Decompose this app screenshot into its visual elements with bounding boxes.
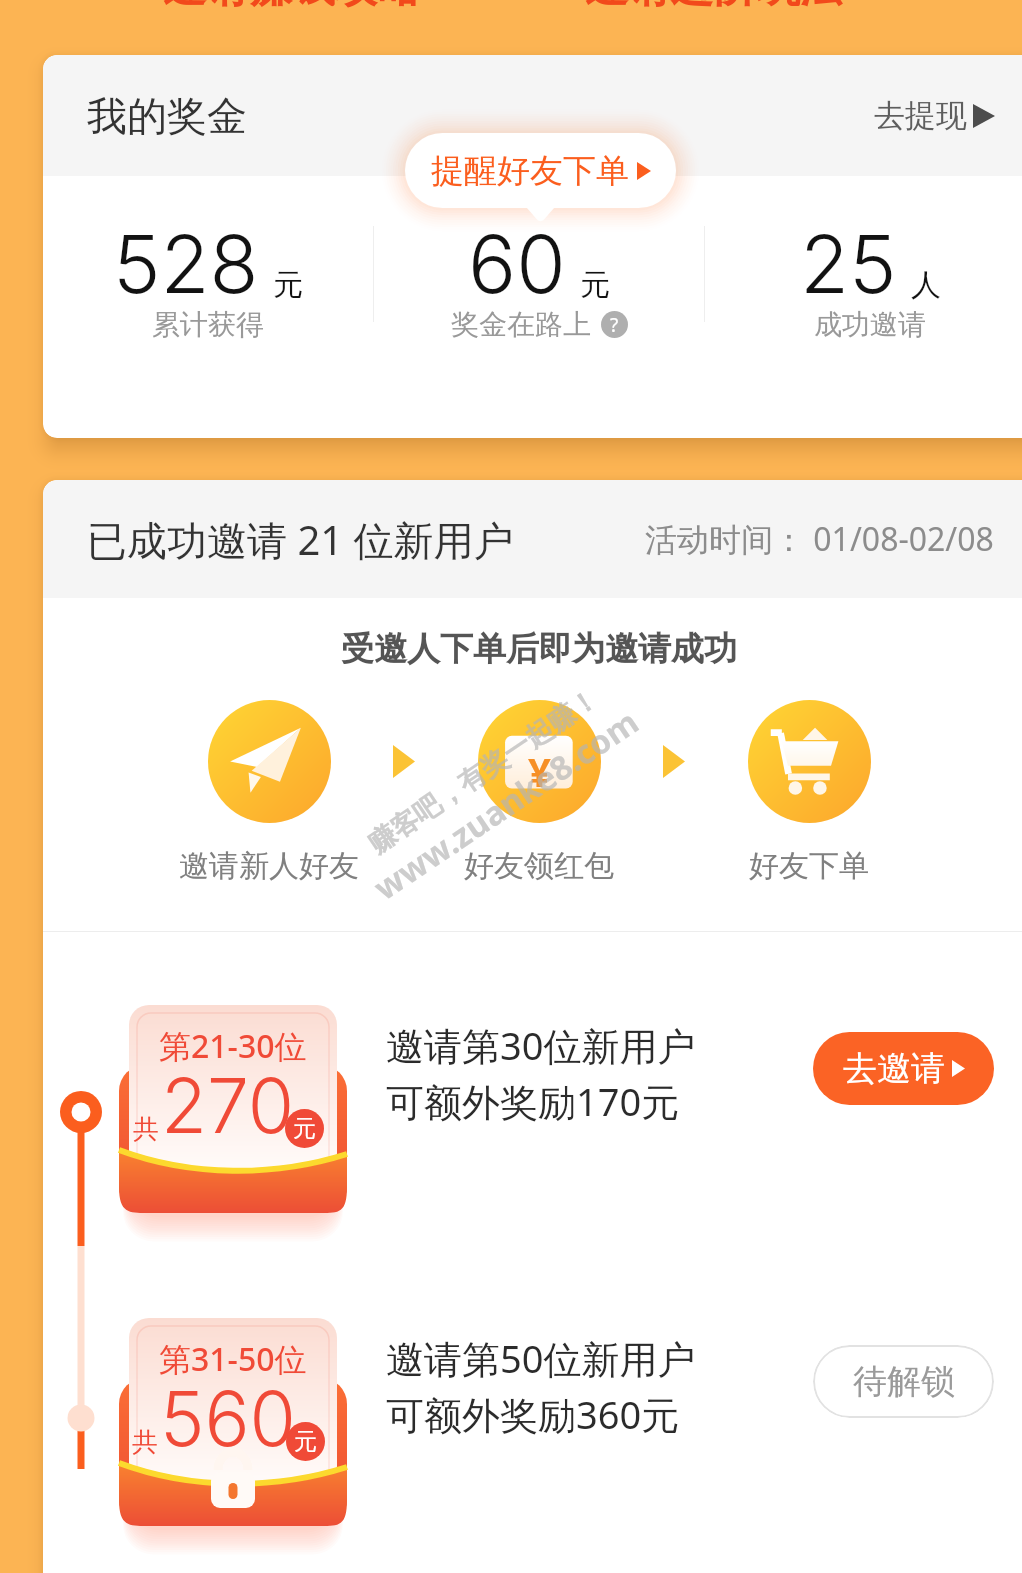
staticText: 我的奖金 <box>87 91 247 141</box>
staticText: 共 <box>133 1113 159 1146</box>
staticText: 528 <box>113 215 259 312</box>
staticText: 受邀人下单后即为邀请成功 <box>341 628 737 670</box>
staticText: 累计获得 <box>152 307 264 342</box>
button[interactable]: 好友下单 <box>685 700 933 885</box>
button[interactable]: 提醒好友下单 <box>405 133 676 208</box>
staticText: www.zuanke8.com <box>365 699 647 910</box>
button[interactable]: 邀请进阶玩法 <box>585 0 843 14</box>
staticText: 元 <box>293 1114 316 1143</box>
staticText: 25 <box>800 215 897 312</box>
staticText: 待解锁 <box>853 1360 955 1403</box>
button[interactable]: 邀请赚钱攻略 <box>163 0 421 14</box>
staticText: 已成功邀请 21 位新用户 <box>87 512 514 567</box>
button[interactable]: 去提现 <box>854 76 1022 155</box>
staticText: 成功邀请 <box>814 307 926 342</box>
staticText: 赚客吧，有奖一起赚！ <box>362 681 605 860</box>
staticText: 邀请第50位新用户 <box>386 1332 696 1384</box>
staticText: 可额外奖励360元 <box>386 1388 680 1440</box>
staticText: 元 <box>273 266 303 304</box>
staticText: 去提现 <box>874 96 967 135</box>
staticText: 560 <box>160 1373 296 1464</box>
staticText: 元 <box>580 266 610 304</box>
staticText: 第21-30位 <box>159 1024 307 1068</box>
button[interactable]: 帮助 <box>601 311 628 338</box>
button[interactable]: ¥ <box>415 700 663 885</box>
staticText: ? <box>610 312 619 338</box>
staticText: ¥ <box>528 744 551 798</box>
button[interactable]: 去邀请 <box>813 1032 994 1105</box>
staticText: 提醒好友下单 <box>431 150 629 192</box>
staticText: 邀请新人好友 <box>179 847 359 885</box>
staticText: 好友领红包 <box>464 847 614 885</box>
button[interactable]: 待解锁 <box>813 1345 994 1418</box>
staticText: 好友下单 <box>749 847 869 885</box>
staticText: 第31-50位 <box>159 1337 307 1381</box>
staticText: 270 <box>161 1060 295 1151</box>
staticText: 活动时间： 01/08-02/08 <box>645 517 994 561</box>
staticText: 去邀请 <box>843 1047 945 1090</box>
staticText: 奖金在路上 <box>451 307 591 342</box>
staticText: 邀请第30位新用户 <box>386 1019 696 1071</box>
staticText: 元 <box>294 1427 317 1456</box>
staticText: 可额外奖励170元 <box>386 1075 680 1127</box>
staticText: 60 <box>468 215 566 312</box>
button[interactable]: 邀请新人好友 <box>145 700 393 885</box>
staticText: 人 <box>911 266 941 304</box>
staticText: 共 <box>132 1426 158 1459</box>
